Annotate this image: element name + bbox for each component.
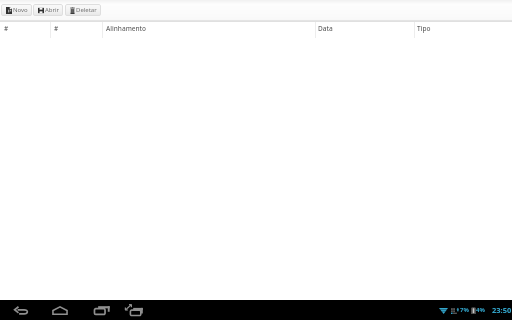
staticText: Abrir	[45, 6, 60, 14]
staticText: Tipo	[417, 24, 431, 33]
staticText: #	[4, 24, 9, 33]
staticText: Novo	[13, 6, 28, 14]
button[interactable]: Home	[52, 300, 68, 320]
button[interactable]: Novo	[1, 4, 32, 16]
button[interactable]: Deletar	[65, 4, 101, 16]
button[interactable]: Back	[14, 300, 29, 320]
staticText: #	[54, 24, 59, 33]
staticText: 7%	[460, 306, 469, 314]
button[interactable]: Alinhamento	[106, 20, 512, 36]
button[interactable]: Abrir	[33, 4, 63, 16]
staticText: Data	[318, 24, 333, 33]
staticText: Deletar	[76, 6, 97, 14]
button[interactable]: #	[4, 20, 512, 36]
button[interactable]: Resize window	[124, 300, 144, 320]
button[interactable]: Data	[318, 20, 512, 36]
button[interactable]: Recent apps	[94, 300, 110, 320]
button[interactable]: #	[54, 20, 512, 36]
staticText: Alinhamento	[106, 24, 147, 33]
staticText: 23:50	[492, 305, 512, 315]
staticText: 4%	[476, 306, 485, 314]
button[interactable]: Tipo	[417, 20, 512, 36]
